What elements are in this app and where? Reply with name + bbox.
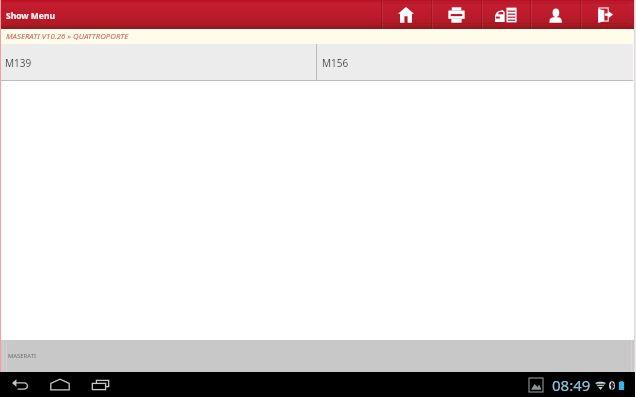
staticText: MASERATI xyxy=(8,352,36,360)
button[interactable]: Home xyxy=(381,0,431,29)
button[interactable]: M139 xyxy=(0,44,316,80)
staticText: Show Menu xyxy=(6,10,55,22)
button[interactable]: Report xyxy=(481,0,530,29)
staticText: 08:49 xyxy=(552,375,591,395)
staticText: MASERATI V10.26 » QUATTROPORTE xyxy=(6,31,129,42)
button[interactable]: Print xyxy=(431,0,481,29)
button[interactable]: Home xyxy=(40,372,80,397)
staticText: M156 xyxy=(322,56,349,70)
button[interactable]: M156 xyxy=(317,44,633,80)
staticText: M139 xyxy=(5,56,32,70)
button[interactable]: Back xyxy=(0,372,40,397)
button[interactable]: Recent apps xyxy=(80,372,120,397)
button[interactable]: User account xyxy=(530,0,580,29)
button[interactable]: Exit xyxy=(580,0,629,29)
